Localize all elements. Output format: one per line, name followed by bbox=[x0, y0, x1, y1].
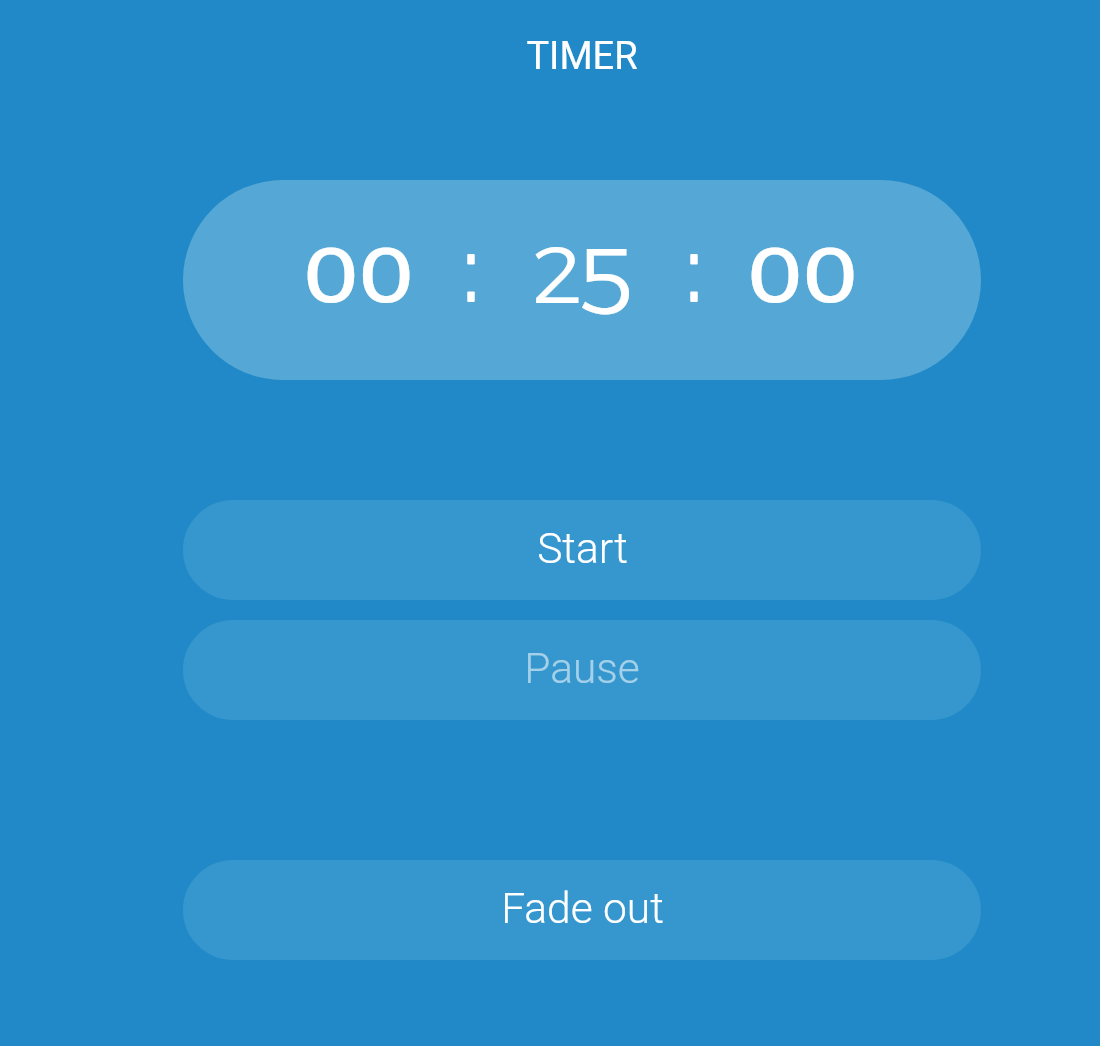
button[interactable]: Fade out bbox=[183, 860, 981, 960]
staticText: 5 bbox=[576, 225, 633, 337]
staticText: 00 bbox=[747, 227, 858, 322]
staticText: Fade out bbox=[501, 884, 664, 934]
staticText: Start bbox=[537, 524, 628, 574]
button[interactable]: Start bbox=[183, 500, 981, 600]
staticText: 2 bbox=[533, 226, 581, 324]
button[interactable]: Timer duration 00 hours 25 minutes 00 se… bbox=[183, 180, 981, 380]
button[interactable]: Pause bbox=[183, 620, 981, 720]
staticText: Pause bbox=[524, 644, 640, 694]
staticText: TIMER bbox=[526, 34, 638, 79]
staticText: 00 bbox=[303, 227, 414, 322]
